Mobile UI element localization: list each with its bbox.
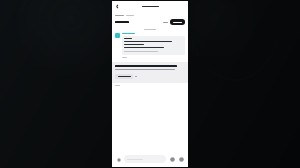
button[interactable]: Attach <box>115 156 122 163</box>
button[interactable] <box>170 19 185 25</box>
button[interactable]: Back <box>114 3 121 10</box>
button[interactable]: Emoji <box>169 156 176 163</box>
button[interactable] <box>115 74 133 79</box>
button[interactable]: Send <box>178 156 185 163</box>
button[interactable] <box>124 155 166 163</box>
